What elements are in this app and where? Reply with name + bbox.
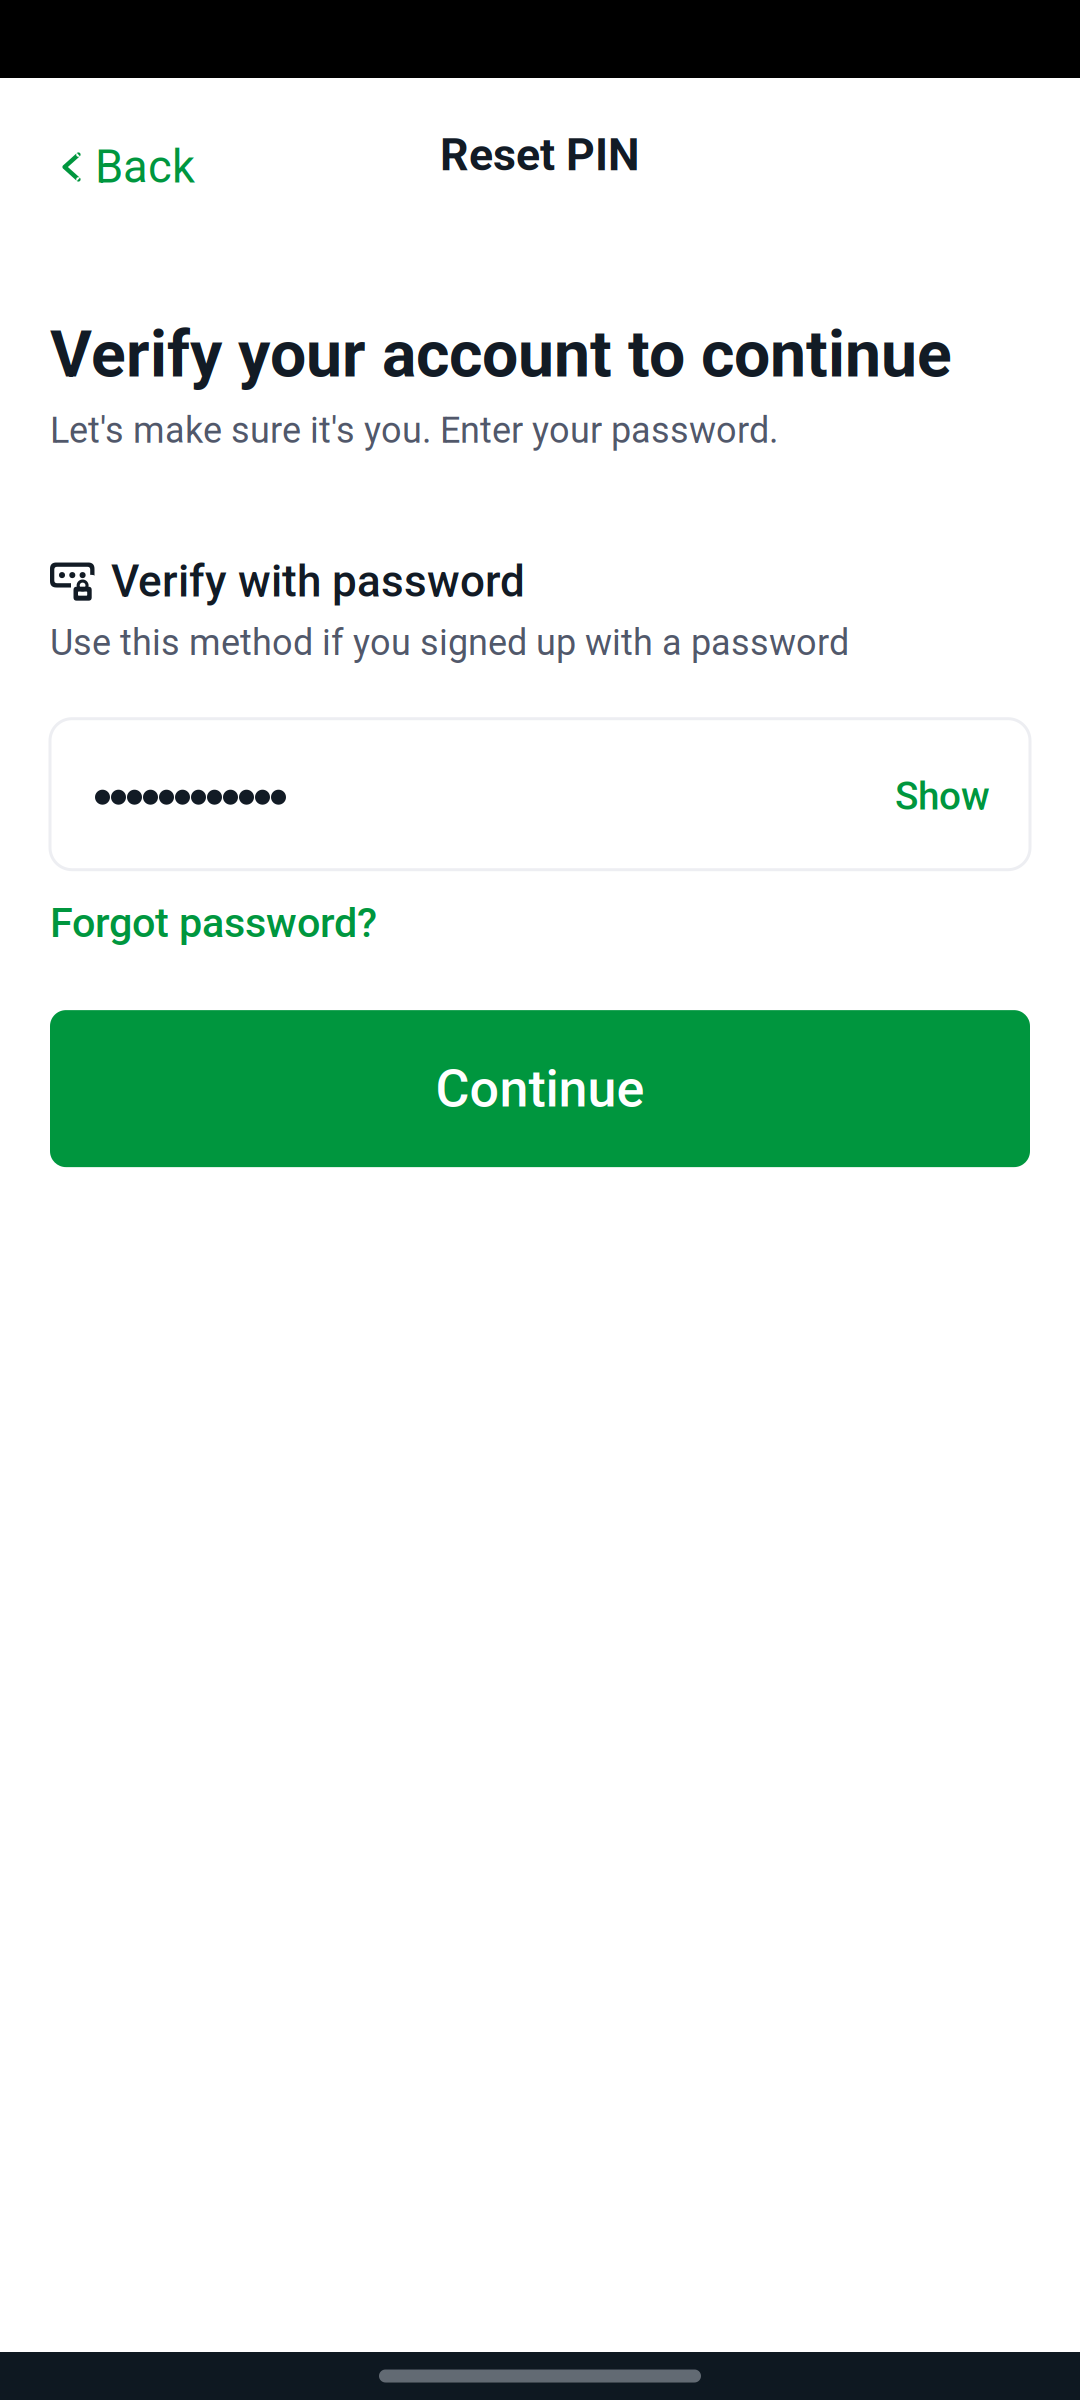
staticText: Verify your account to continue bbox=[50, 317, 952, 392]
staticText: Back bbox=[95, 140, 195, 193]
button[interactable]: Show bbox=[877, 763, 990, 831]
staticText: Use this method if you signed up with a … bbox=[50, 621, 849, 664]
button[interactable]: Continue bbox=[50, 1010, 1030, 1167]
button[interactable]: Back bbox=[48, 108, 209, 209]
staticText: Let's make sure it's you. Enter your pas… bbox=[50, 409, 778, 451]
staticText: Reset PIN bbox=[440, 129, 640, 181]
button[interactable]: Forgot password? bbox=[50, 887, 377, 959]
staticText: Continue bbox=[435, 1058, 644, 1119]
staticText: Verify with password bbox=[111, 556, 525, 607]
staticText: Forgot password? bbox=[50, 899, 377, 947]
staticText: Show bbox=[895, 773, 990, 819]
